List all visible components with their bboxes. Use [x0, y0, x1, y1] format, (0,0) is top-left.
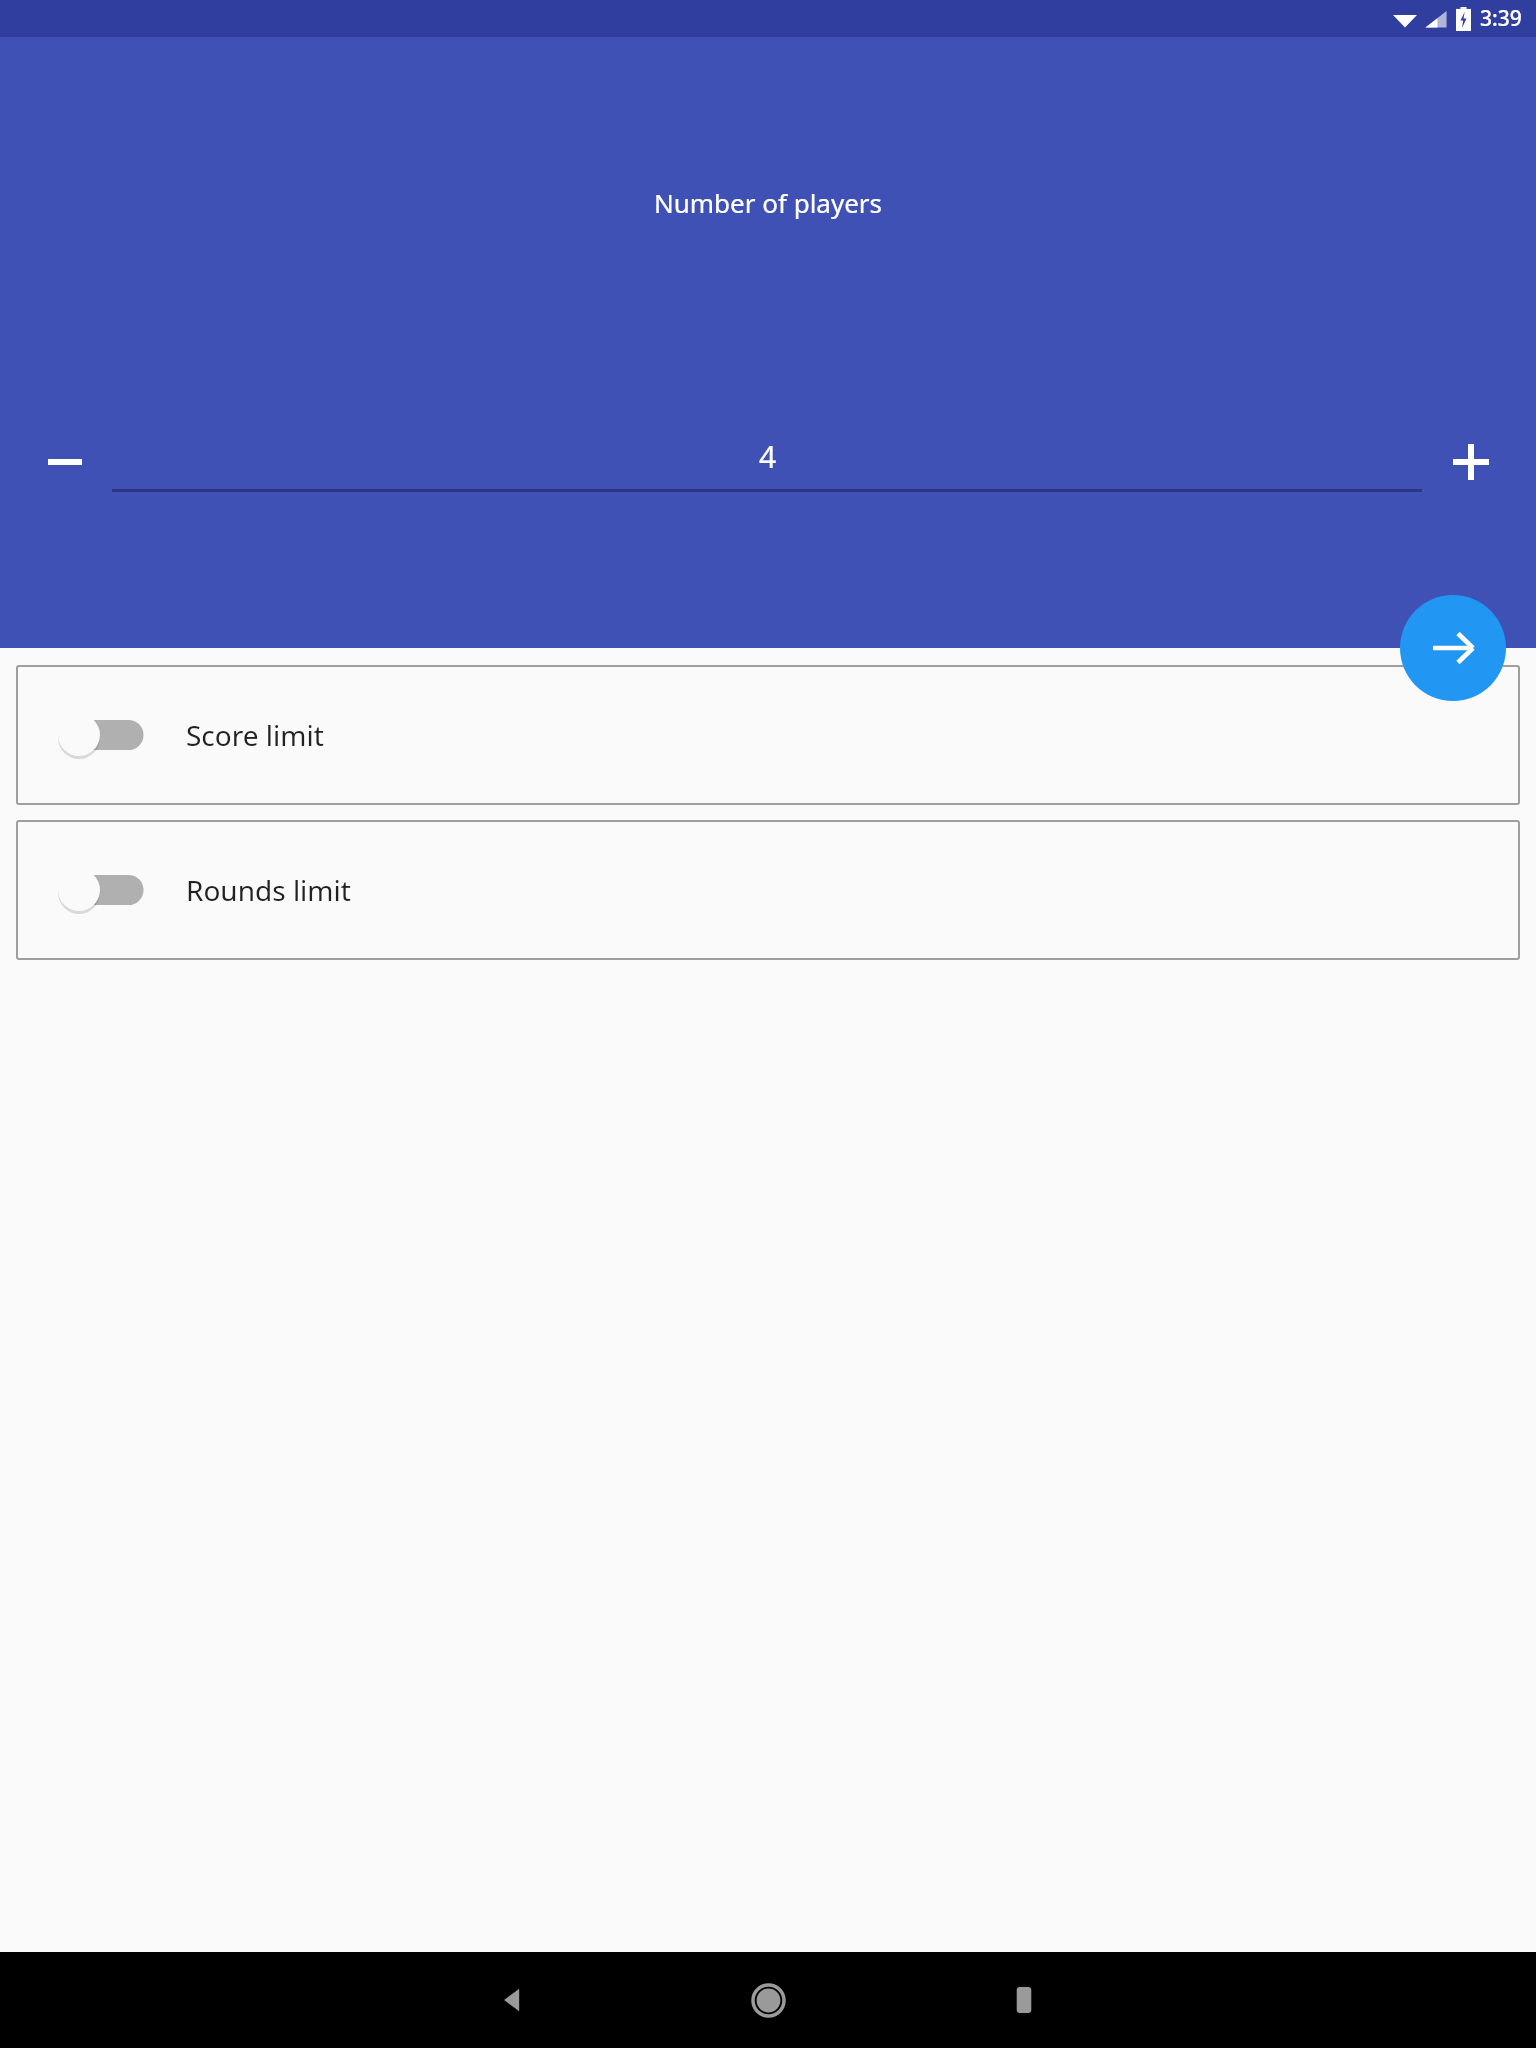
- button[interactable]: Decrease: [10, 422, 120, 502]
- staticText: Score limit: [186, 716, 324, 754]
- button[interactable]: Home: [711, 1952, 826, 2048]
- staticText: 3:39: [1480, 4, 1522, 33]
- staticText: Rounds limit: [186, 871, 351, 909]
- button[interactable]: Recents: [966, 1952, 1081, 2048]
- staticText: Number of players: [0, 185, 1536, 220]
- button[interactable]: Score limit: [16, 665, 1520, 805]
- staticText: 4: [759, 436, 777, 477]
- button[interactable]: Back: [455, 1952, 570, 2048]
- button[interactable]: Increase: [1416, 422, 1526, 502]
- button[interactable]: Next: [1400, 595, 1506, 701]
- button[interactable]: Rounds limit: [16, 820, 1520, 960]
